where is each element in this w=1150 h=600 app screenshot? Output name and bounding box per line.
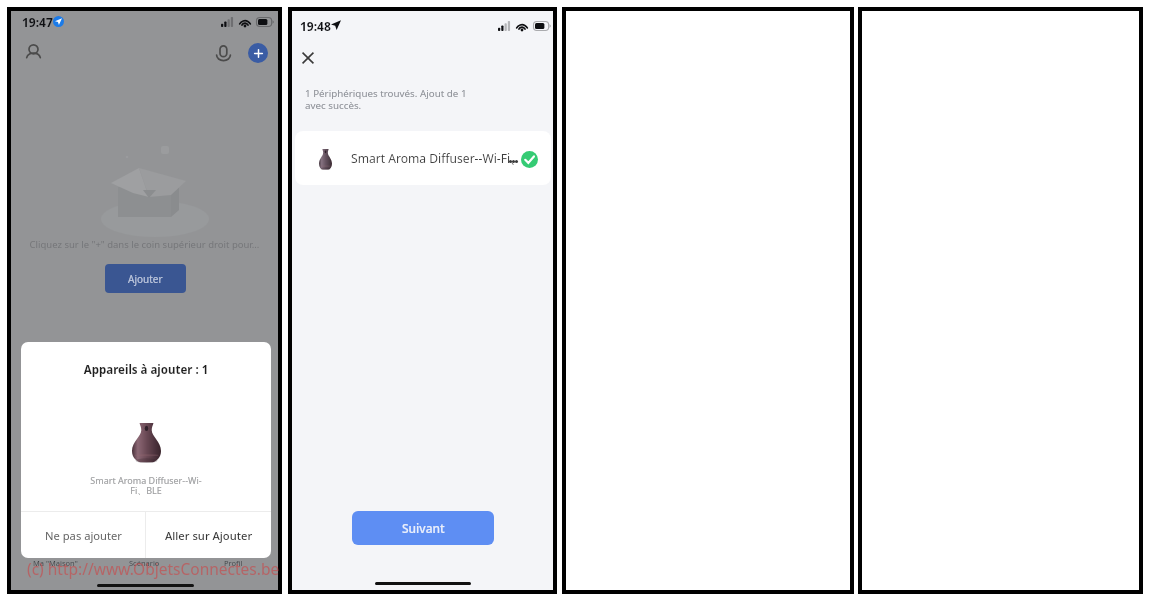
button[interactable]: Profile — [25, 43, 45, 63]
button[interactable]: Suivant — [352, 511, 494, 545]
button[interactable]: Ne pas ajouter — [21, 512, 145, 558]
button[interactable]: Scénario — [100, 557, 189, 569]
staticText: Smart Aroma Diffuser--Wi- Fi、BLE — [21, 474, 271, 497]
staticText: Smart Aroma Diffuser--Wi-Fi、 — [351, 150, 523, 167]
button[interactable]: Voice search — [214, 43, 234, 63]
button[interactable]: Profil — [189, 557, 278, 569]
button[interactable]: Add device — [248, 43, 268, 63]
staticText: 19:48 — [300, 18, 331, 34]
staticText: Cliquez sur le "+" dans le coin supérieu… — [11, 238, 278, 251]
staticText: Aller sur Ajouter — [165, 528, 253, 543]
staticText: Ajouter — [128, 272, 163, 286]
button[interactable]: Close — [300, 50, 316, 66]
button[interactable]: Smart Aroma Diffuser--Wi-Fi、 — [295, 131, 551, 185]
button[interactable]: Aller sur Ajouter — [146, 512, 271, 558]
staticText: Scénario — [129, 558, 160, 568]
staticText: Appareils à ajouter : 1 — [21, 362, 271, 378]
staticText: Ma "Maison" — [33, 558, 78, 568]
button[interactable]: Ajouter — [105, 264, 186, 293]
staticText: Ne pas ajouter — [45, 528, 122, 543]
staticText: 1 Périphériques trouvés. Ajout de 1 avec… — [305, 87, 467, 112]
staticText: 19:47 — [22, 14, 53, 30]
staticText: (c) http://www.ObjetsConnectes.be — [27, 558, 280, 579]
staticText: Suivant — [402, 520, 445, 536]
staticText: Profil — [224, 558, 243, 568]
button[interactable]: Ma "Maison" — [11, 557, 100, 569]
